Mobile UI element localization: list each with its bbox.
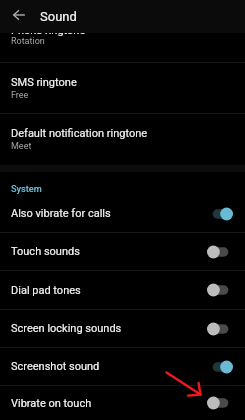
button[interactable]: Also vibrate for calls	[0, 195, 245, 232]
button[interactable]: Touch sounds	[0, 233, 245, 270]
staticText: Also vibrate for calls	[11, 207, 207, 220]
staticText: Default notification ringtone	[11, 127, 148, 140]
staticText: Screenshot sound	[11, 360, 207, 373]
button[interactable]: Vibrate on touch	[0, 386, 245, 420]
staticText: Screen locking sounds	[11, 322, 207, 335]
button[interactable]: Screen locking sounds	[0, 310, 245, 347]
staticText: Touch sounds	[11, 245, 207, 258]
staticText: Rotation	[11, 36, 45, 47]
button[interactable]: Screenshot sound	[0, 348, 245, 385]
staticText: Vibrate on touch	[11, 397, 207, 410]
button[interactable]: Default notification ringtone	[0, 114, 245, 165]
staticText: SMS ringtone	[11, 76, 77, 89]
button[interactable]: Dial pad tones	[0, 271, 245, 309]
staticText: Sound	[40, 9, 77, 24]
staticText: Phone ringtone	[11, 24, 86, 37]
button[interactable]: SMS ringtone	[0, 63, 245, 113]
staticText: Meet	[11, 141, 32, 152]
staticText: Free	[11, 90, 29, 101]
staticText: System	[11, 183, 42, 194]
staticText: Dial pad tones	[11, 284, 207, 297]
button[interactable]: Back	[2, 0, 35, 33]
button[interactable]: Phone ringtone	[0, 0, 245, 62]
